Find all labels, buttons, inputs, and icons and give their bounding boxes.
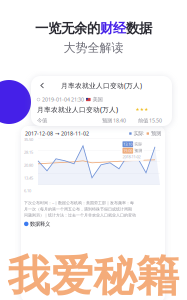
staticText: 28.15 (24, 150, 33, 155)
staticText: 预测 18.40 (102, 117, 126, 124)
staticText: 19.00 (123, 148, 132, 153)
staticText: 月一次（每月的第一个周五公布，遇到特殊节假日或统计周期 (24, 207, 132, 211)
staticText: 前值 15.50 (138, 117, 162, 124)
staticText: 数据 (126, 20, 152, 36)
button[interactable]: Back (36, 78, 48, 92)
staticText: 35.50 (24, 137, 33, 142)
staticText: 20.80 (24, 162, 33, 168)
staticText: 6.10 (24, 188, 31, 193)
staticText: 2019-01-04 21:30 (42, 96, 84, 103)
staticText: 下次公布时间：--｜数据公布机构：美国劳工部｜发布频率：每 (24, 200, 134, 205)
staticText: 大势全解读 (63, 40, 123, 55)
staticText: 2017-12-08 → 2018-11-02 (25, 130, 89, 137)
staticText: 13.10 (123, 142, 132, 147)
staticText: 月率农就业人口变动(万人) (37, 105, 118, 114)
staticText: 美国 (93, 96, 103, 103)
staticText: 财经 (100, 20, 126, 36)
staticText: 预测 (134, 148, 142, 153)
staticText: 今值 (37, 117, 47, 124)
staticText: 2018-11-02 (122, 154, 140, 159)
staticText: 我爱秘籍 (7, 250, 179, 300)
staticText: 问题则另）｜统计方法：过去一个月非农业人口就业人口的变动 (24, 213, 136, 218)
staticText: 实际 (132, 130, 144, 137)
staticText: 实际 (134, 142, 142, 147)
staticText: 月率农就业人口变动(万人) (61, 81, 142, 90)
staticText: 13.45 (24, 175, 33, 180)
staticText: 一览无余的 (35, 20, 100, 36)
staticText: 数据释义 (30, 221, 50, 227)
staticText: 预测 (149, 130, 161, 137)
